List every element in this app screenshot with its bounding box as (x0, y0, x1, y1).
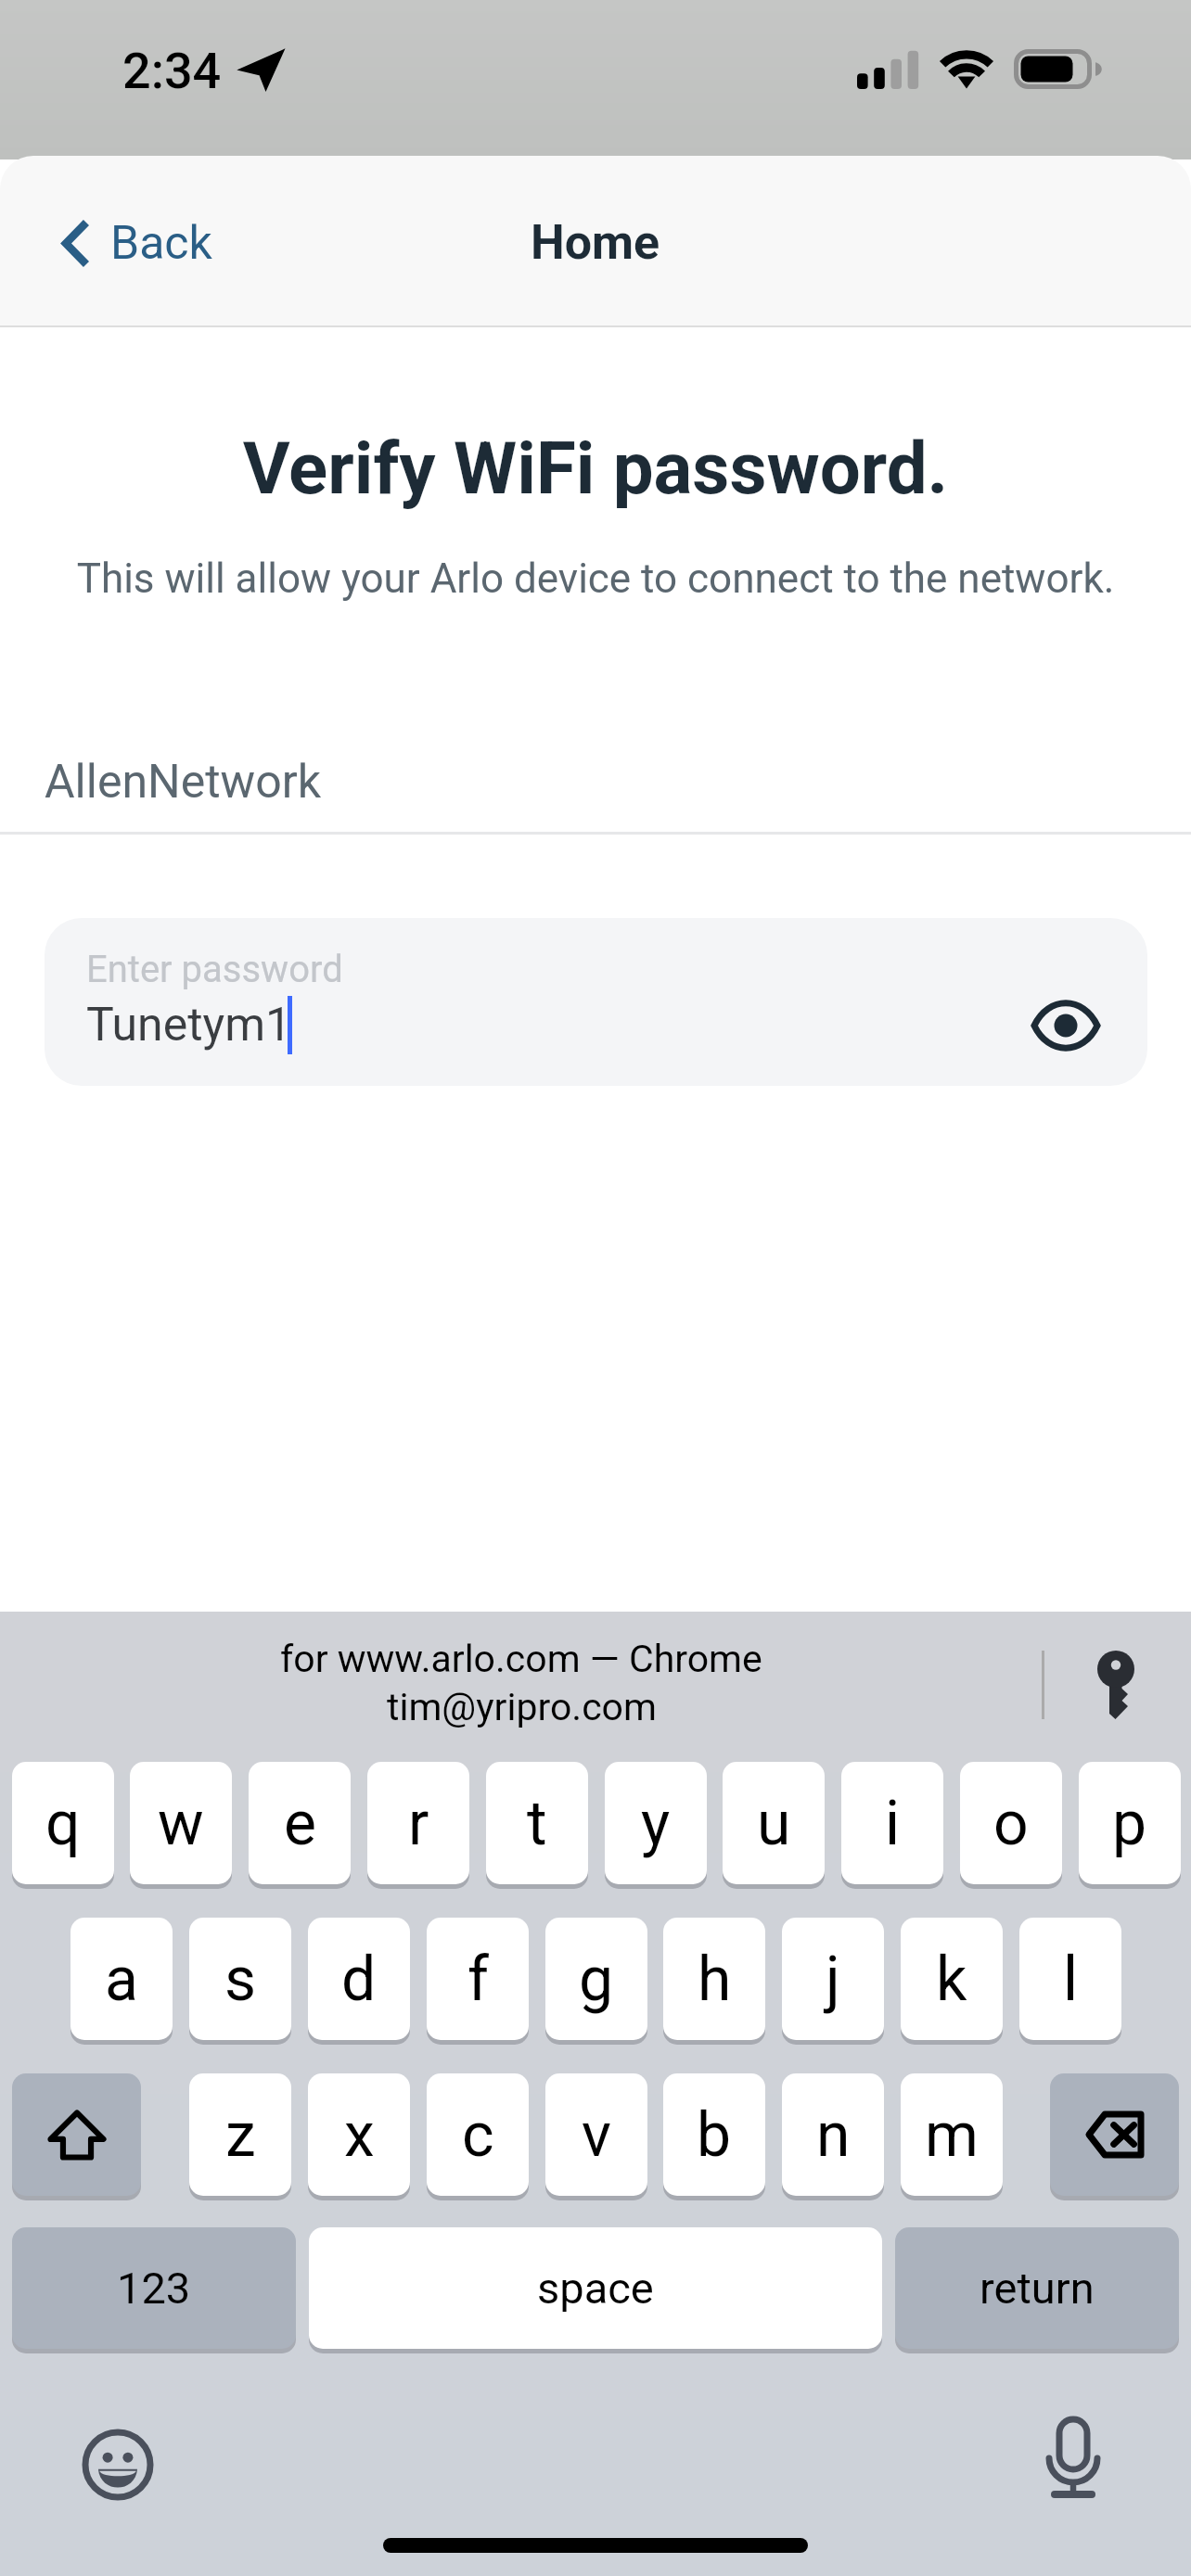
staticText: tim@yripro.com (387, 1685, 657, 1729)
button[interactable]: l (1019, 1918, 1121, 2040)
button[interactable]: Emoji keyboard (82, 2429, 154, 2501)
staticText: i (885, 1788, 901, 1859)
staticText: a (105, 1944, 138, 2015)
staticText: d (341, 1944, 377, 2015)
button[interactable]: space (309, 2227, 882, 2349)
staticText: l (1063, 1944, 1079, 2015)
button[interactable]: n (782, 2073, 884, 2196)
staticText: space (537, 2263, 654, 2314)
staticText: This will allow your Arlo device to conn… (0, 555, 1191, 603)
staticText: Verify WiFi password. (0, 427, 1191, 511)
button[interactable]: g (545, 1918, 647, 2040)
staticText: Tunetym1 (86, 998, 292, 1052)
staticText: q (45, 1788, 81, 1859)
button[interactable]: m (901, 2073, 1003, 2196)
button[interactable]: Back (43, 184, 228, 295)
button[interactable]: w (130, 1762, 232, 1884)
button[interactable]: i (841, 1762, 943, 1884)
staticText: x (344, 2099, 375, 2171)
button[interactable]: t (486, 1762, 588, 1884)
staticText: n (816, 2099, 851, 2171)
staticText: r (408, 1788, 429, 1859)
staticText: e (284, 1788, 316, 1859)
staticText: k (936, 1944, 967, 2015)
button[interactable]: v (545, 2073, 647, 2196)
button[interactable]: Shift (12, 2073, 141, 2196)
staticText: Enter password (86, 948, 343, 991)
button[interactable]: 123 (12, 2227, 296, 2349)
button[interactable]: b (663, 2073, 765, 2196)
staticText: g (579, 1944, 614, 2015)
staticText: v (582, 2099, 611, 2171)
button[interactable]: p (1079, 1762, 1181, 1884)
staticText: b (697, 2099, 732, 2171)
button[interactable]: j (782, 1918, 884, 2040)
button[interactable]: o (960, 1762, 1062, 1884)
button[interactable]: s (189, 1918, 291, 2040)
staticText: for www.arlo.com — Chrome (280, 1637, 762, 1681)
staticText: return (980, 2263, 1095, 2314)
staticText: o (993, 1788, 1029, 1859)
staticText: h (698, 1944, 732, 2015)
staticText: c (462, 2099, 494, 2171)
button[interactable]: q (12, 1762, 114, 1884)
staticText: w (158, 1788, 204, 1859)
button[interactable]: return (895, 2227, 1179, 2349)
staticText: z (225, 2099, 256, 2171)
staticText: p (1112, 1788, 1147, 1859)
staticText: AllenNetwork (45, 755, 321, 810)
button[interactable]: Enter password (45, 918, 1147, 1086)
button[interactable]: d (308, 1918, 410, 2040)
button[interactable]: f (427, 1918, 529, 2040)
button[interactable]: a (70, 1918, 173, 2040)
staticText: 123 (117, 2263, 191, 2314)
button[interactable]: r (367, 1762, 469, 1884)
staticText: Back (110, 216, 212, 271)
button[interactable]: h (663, 1918, 765, 2040)
button[interactable]: z (189, 2073, 291, 2196)
staticText: j (826, 1944, 840, 2015)
button[interactable]: x (308, 2073, 410, 2196)
staticText: Home (531, 214, 660, 271)
button[interactable]: y (605, 1762, 707, 1884)
staticText: s (224, 1944, 257, 2015)
staticText: f (467, 1944, 489, 2015)
button[interactable]: k (901, 1918, 1003, 2040)
button[interactable]: Show password (1026, 986, 1106, 1065)
button[interactable]: Backspace (1050, 2073, 1179, 2196)
button[interactable]: u (723, 1762, 825, 1884)
button[interactable]: c (427, 2073, 529, 2196)
staticText: m (925, 2099, 979, 2171)
staticText: u (757, 1788, 791, 1859)
staticText: 2:34 (122, 42, 222, 100)
staticText: y (641, 1788, 671, 1859)
button[interactable]: e (249, 1762, 351, 1884)
button[interactable]: Passwords (1085, 1639, 1150, 1732)
staticText: t (527, 1788, 547, 1859)
button[interactable]: Dictation (1036, 2408, 1110, 2508)
